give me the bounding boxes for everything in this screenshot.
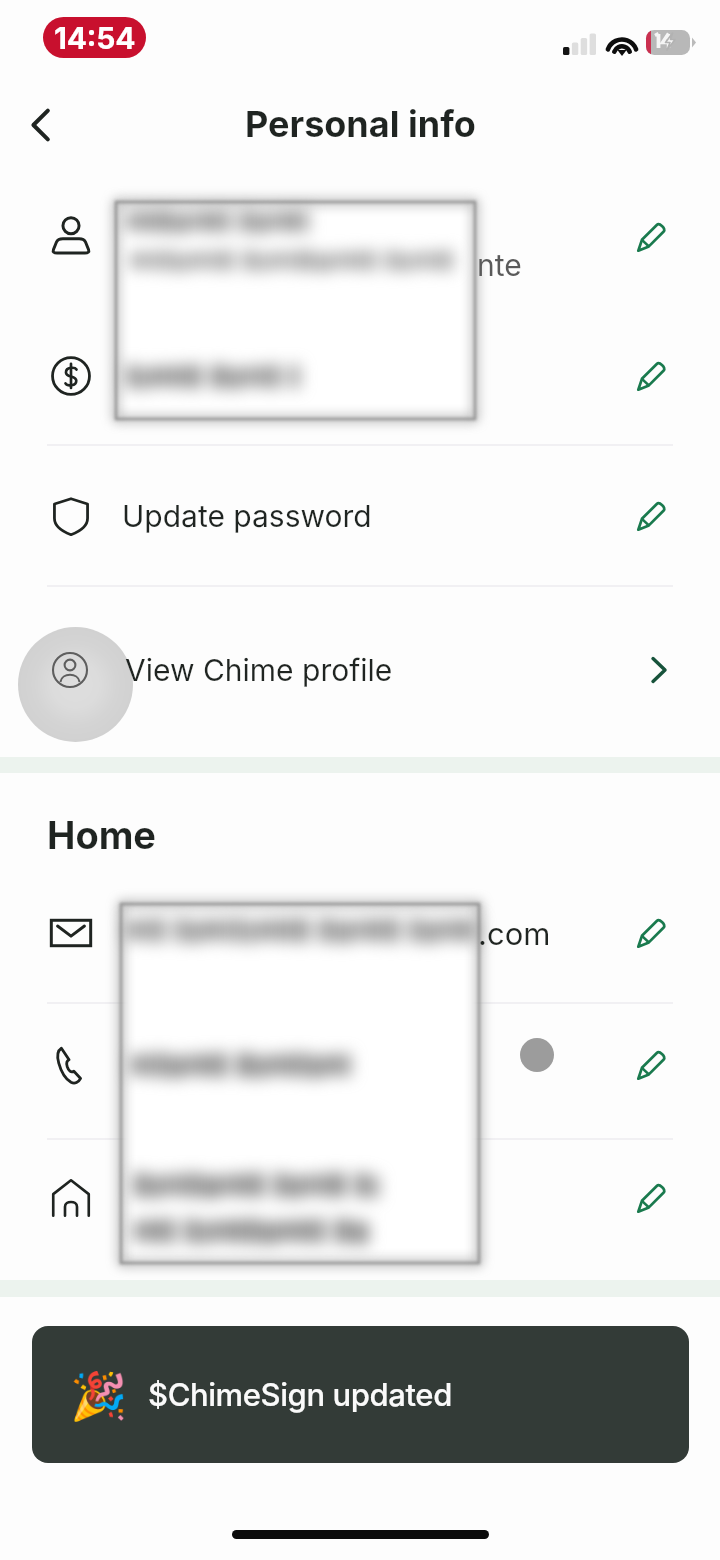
button[interactable]: Edit ChimeSign: [624, 349, 678, 403]
staticText: .com: [478, 915, 551, 953]
staticText: 14:54: [54, 20, 136, 56]
staticText: $ChimeSign updated: [148, 1376, 452, 1414]
button[interactable]: Edit address: [624, 1171, 678, 1225]
button[interactable]: Edit name: [0, 172, 720, 302]
staticText: Update password: [122, 498, 372, 534]
button[interactable]: Edit password: [624, 489, 678, 543]
button[interactable]: Edit phone: [0, 1000, 720, 1130]
button[interactable]: Back: [8, 92, 74, 158]
staticText: Personal info: [245, 102, 476, 146]
staticText: View Chime profile: [125, 652, 393, 688]
button[interactable]: Edit name: [624, 210, 678, 264]
button[interactable]: Update password: [0, 451, 720, 581]
staticText: nte: [477, 247, 522, 283]
button[interactable]: Edit email: [624, 906, 678, 960]
staticText: 🎉: [70, 1369, 128, 1423]
button[interactable]: Edit phone: [624, 1038, 678, 1092]
button[interactable]: Edit email: [0, 868, 720, 998]
button[interactable]: 🎉: [32, 1326, 689, 1463]
staticText: Home: [47, 812, 157, 858]
button[interactable]: Edit ChimeSign: [0, 311, 720, 441]
button[interactable]: View Chime profile: [0, 595, 720, 745]
button[interactable]: Edit address: [0, 1133, 720, 1263]
